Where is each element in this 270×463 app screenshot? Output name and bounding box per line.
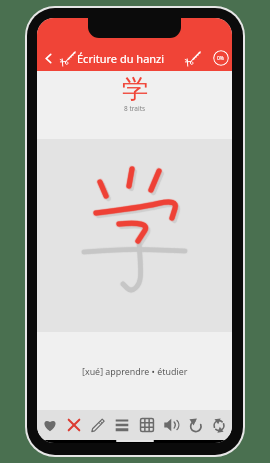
staticText: 0%	[217, 55, 225, 62]
button[interactable]: Back	[40, 50, 56, 66]
staticText: 8 traits	[124, 104, 146, 113]
staticText: Écriture du hanzi	[77, 51, 165, 66]
button[interactable]: Replay	[208, 411, 230, 439]
button[interactable]: Favorite	[39, 411, 61, 439]
button[interactable]: Sound	[160, 411, 182, 439]
button[interactable]: Brush	[183, 49, 201, 67]
staticText: 学	[122, 73, 148, 106]
button[interactable]: Strokes	[111, 411, 133, 439]
button[interactable]: Brush style	[58, 49, 76, 67]
staticText: [xué] apprendre • étudier	[82, 365, 188, 377]
button[interactable]: Progress 0 percent	[213, 50, 229, 66]
button[interactable]: Undo	[184, 411, 206, 439]
button[interactable]: Clear	[63, 411, 85, 439]
button[interactable]: Grid	[136, 411, 158, 439]
button[interactable]: Draw	[87, 411, 109, 439]
